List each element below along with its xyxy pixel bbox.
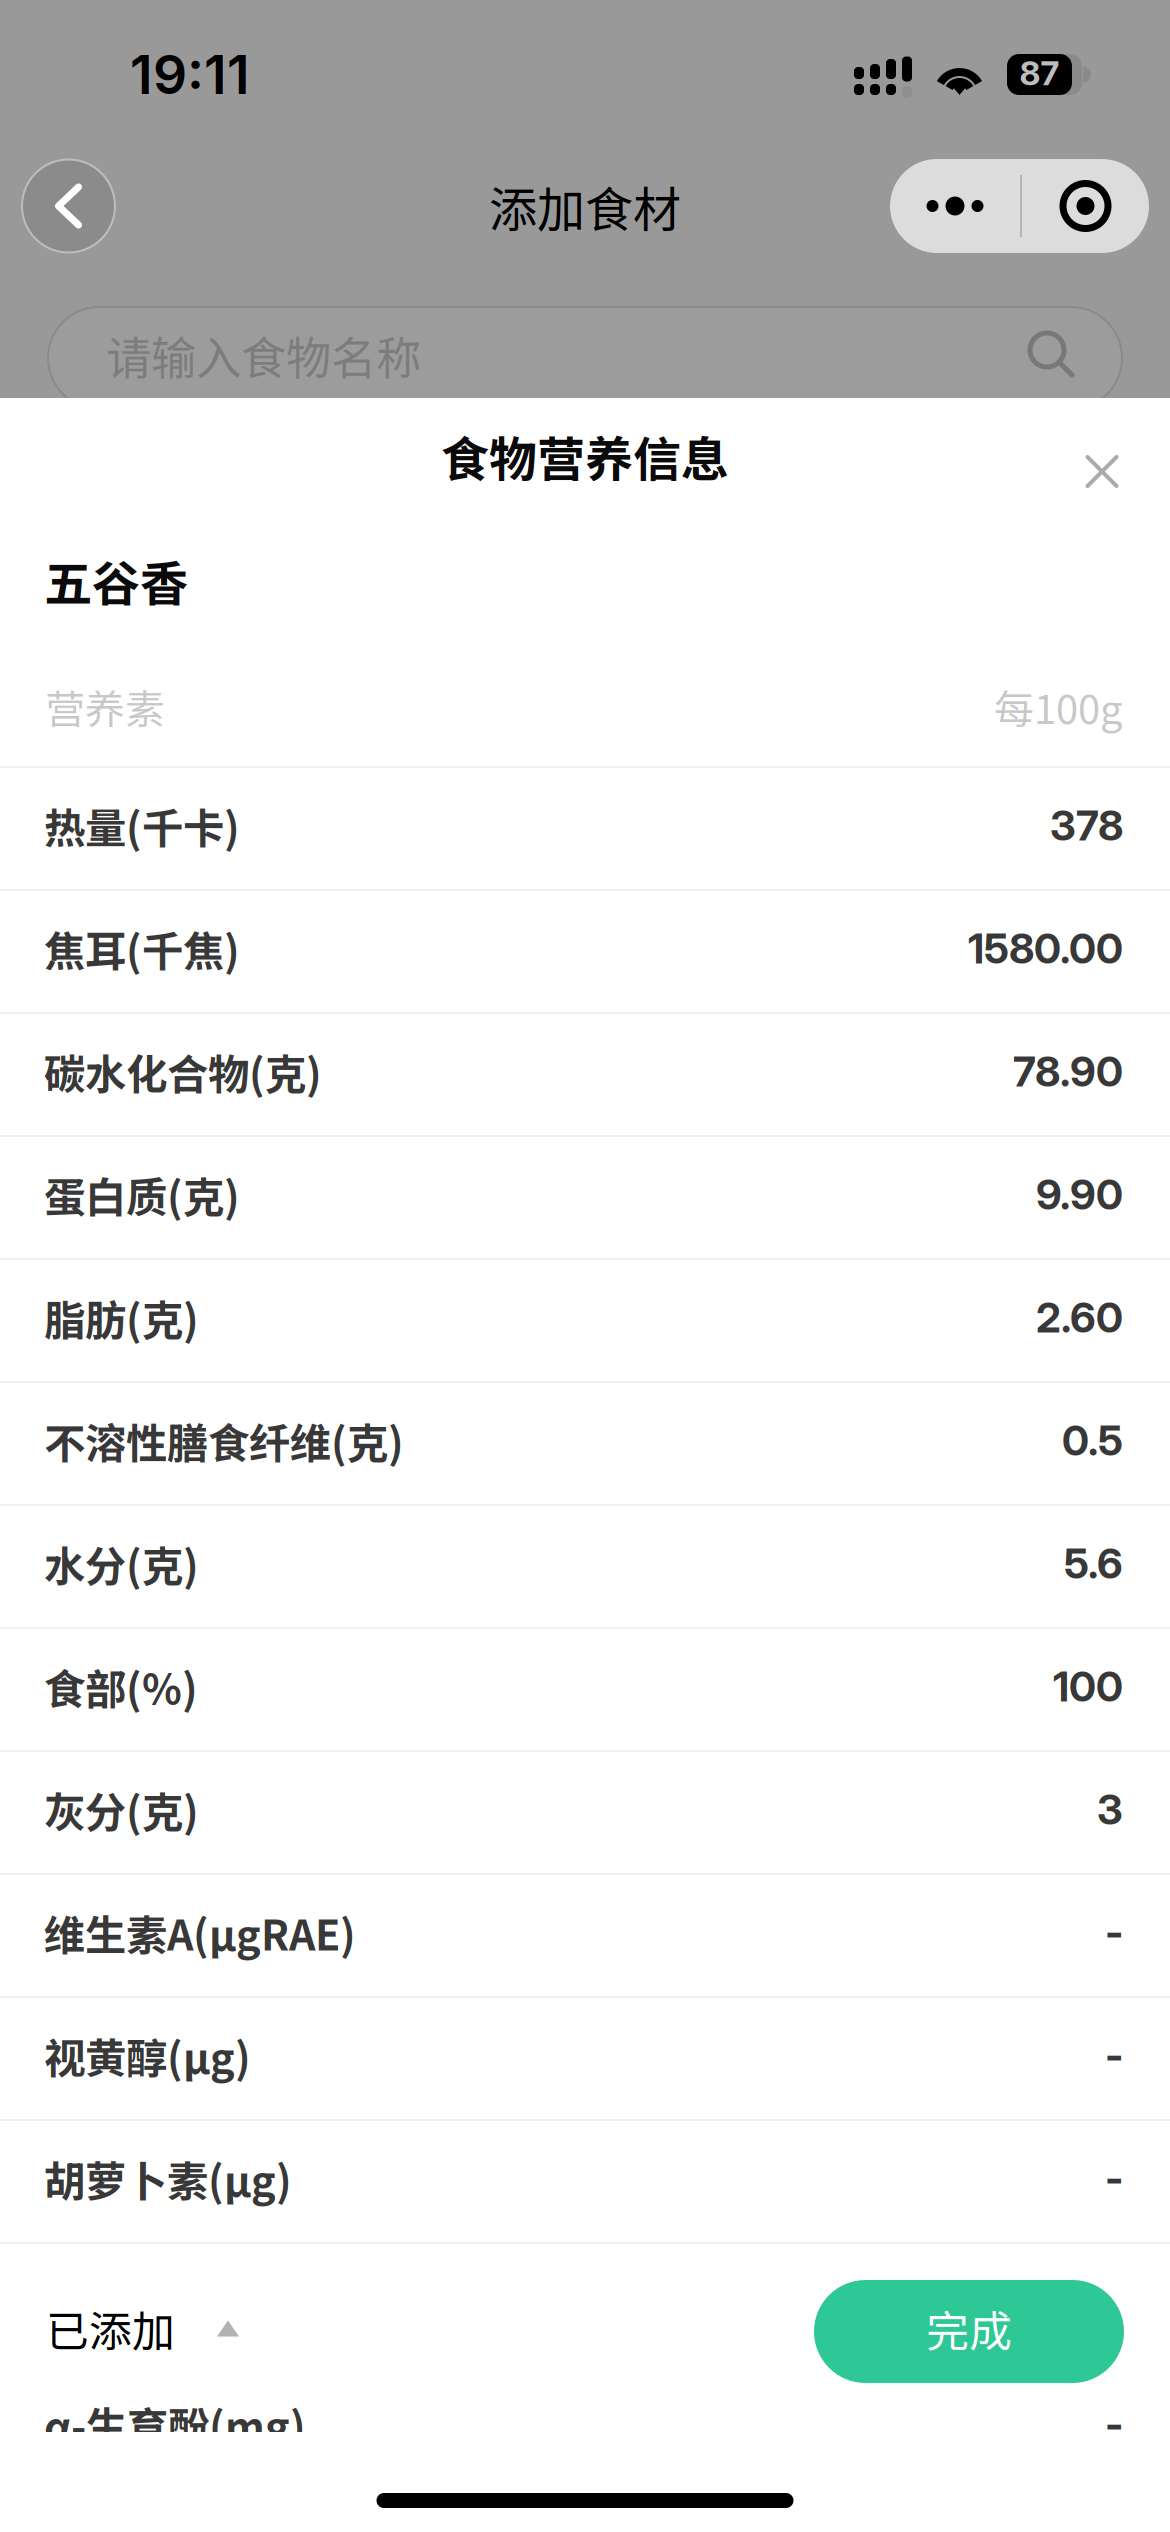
button[interactable]: Close xyxy=(1057,415,1147,505)
button[interactable]: 焦耳(千焦) xyxy=(0,891,1170,1014)
staticText: 3 xyxy=(1097,1784,1123,1834)
button[interactable]: 视黄醇(μg) xyxy=(0,1998,1170,2121)
staticText: 维生素A(μgRAE) xyxy=(44,1903,356,1962)
staticText: 五谷香 xyxy=(44,546,188,615)
staticText: 1580.00 xyxy=(968,923,1123,973)
staticText: 每100g xyxy=(994,677,1123,735)
staticText: 食部(%) xyxy=(44,1657,198,1716)
staticText: 胡萝卜素(μg) xyxy=(44,2149,292,2208)
staticText: 已添加 xyxy=(46,2298,175,2359)
button[interactable]: 碳水化合物(克) xyxy=(0,1014,1170,1137)
button[interactable]: α-生育酚(mg) xyxy=(0,2367,1170,2490)
button[interactable]: More options xyxy=(890,159,1149,253)
button[interactable]: 维生素E(mg) xyxy=(0,2244,1170,2367)
staticText: 完成 xyxy=(926,2298,1012,2359)
staticText: 请输入食物名称 xyxy=(106,322,421,388)
staticText: 脂肪(克) xyxy=(44,1288,199,1347)
staticText: 5.6 xyxy=(1064,1538,1123,1588)
staticText: 0.5 xyxy=(1062,1415,1123,1465)
button[interactable]: 蛋白质(克) xyxy=(0,1137,1170,1260)
button[interactable]: 灰分(克) xyxy=(0,1752,1170,1875)
staticText: 9.90 xyxy=(1036,1169,1123,1219)
button[interactable]: 完成 xyxy=(814,2252,1124,2393)
staticText: 食物营养信息 xyxy=(441,421,729,491)
button[interactable]: 食部(%) xyxy=(0,1629,1170,1752)
staticText: - xyxy=(1105,2276,1123,2326)
button[interactable]: 水分(克) xyxy=(0,1506,1170,1629)
staticText: 维生素E(mg) xyxy=(44,2272,289,2331)
button[interactable]: 已添加 xyxy=(46,2252,239,2393)
staticText: α-生育酚(mg) xyxy=(44,2395,306,2454)
staticText: - xyxy=(1105,2153,1123,2203)
staticText: 87 xyxy=(1019,53,1059,93)
staticText: 热量(千卡) xyxy=(44,796,240,855)
staticText: 水分(克) xyxy=(44,1534,199,1593)
button[interactable]: 请输入食物名称 xyxy=(0,263,1170,409)
button[interactable]: 热量(千卡) xyxy=(0,768,1170,891)
button[interactable]: Back xyxy=(22,159,115,252)
staticText: 视黄醇(μg) xyxy=(44,2026,251,2085)
staticText: 100 xyxy=(1053,1661,1123,1711)
staticText: 2.60 xyxy=(1036,1292,1123,1342)
staticText: 营养素 xyxy=(45,677,165,735)
button[interactable]: 不溶性膳食纤维(克) xyxy=(0,1383,1170,1506)
staticText: 添加食材 xyxy=(489,171,681,241)
button[interactable]: 维生素A(μgRAE) xyxy=(0,1875,1170,1998)
staticText: - xyxy=(1105,2030,1123,2080)
staticText: 灰分(克) xyxy=(44,1780,199,1839)
staticText: 焦耳(千焦) xyxy=(44,919,240,978)
staticText: - xyxy=(1105,2399,1123,2449)
staticText: 378 xyxy=(1050,800,1123,850)
button[interactable]: 脂肪(克) xyxy=(0,1260,1170,1383)
staticText: 19:11 xyxy=(130,42,250,107)
staticText: 不溶性膳食纤维(克) xyxy=(44,1411,404,1470)
staticText: 蛋白质(克) xyxy=(44,1165,240,1224)
staticText: 碳水化合物(克) xyxy=(44,1042,322,1101)
button[interactable]: 胡萝卜素(μg) xyxy=(0,2121,1170,2244)
staticText: 78.90 xyxy=(1013,1046,1123,1096)
staticText: - xyxy=(1105,1907,1123,1957)
